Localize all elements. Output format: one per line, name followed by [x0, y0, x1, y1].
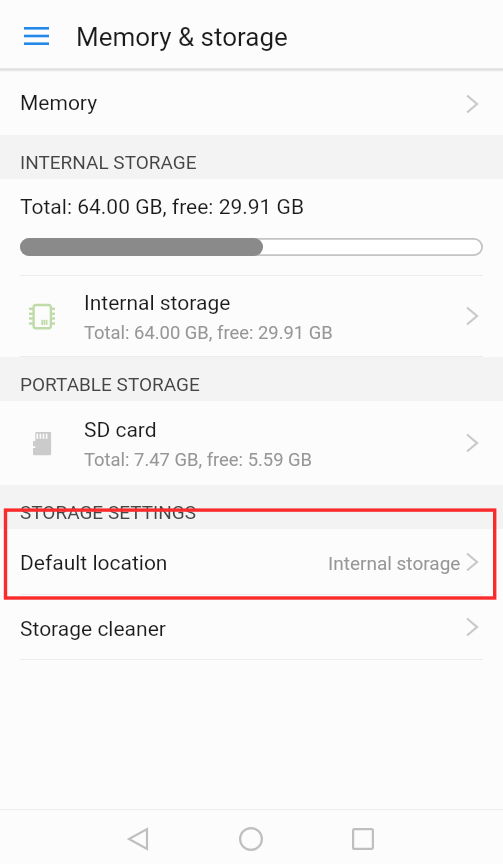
staticText: INTERNAL STORAGE: [20, 151, 197, 173]
button[interactable]: Recent apps: [332, 812, 393, 864]
staticText: SD card: [84, 418, 157, 443]
staticText: Internal storage: [328, 552, 461, 574]
staticText: Default location: [20, 551, 168, 576]
staticText: Total: 64.00 GB, free: 29.91 GB: [20, 195, 305, 220]
button[interactable]: Back: [107, 812, 168, 864]
staticText: Total: 7.47 GB, free: 5.59 GB: [84, 449, 313, 471]
button[interactable]: Home: [220, 812, 281, 864]
button[interactable]: SD card: [0, 401, 503, 485]
staticText: Memory: [20, 91, 98, 116]
button[interactable]: Internal storage: [0, 276, 503, 356]
staticText: Total: 64.00 GB, free: 29.91 GB: [84, 322, 333, 344]
staticText: Internal storage: [84, 291, 231, 316]
staticText: Memory & storage: [76, 22, 288, 52]
staticText: Storage cleaner: [20, 617, 166, 642]
staticText: PORTABLE STORAGE: [20, 373, 200, 395]
staticText: STORAGE SETTINGS: [20, 501, 196, 523]
button[interactable]: Open navigation menu: [0, 0, 72, 68]
button[interactable]: Storage cleaner: [0, 595, 503, 659]
button[interactable]: Default location: [0, 529, 503, 594]
button[interactable]: Memory: [0, 72, 503, 135]
